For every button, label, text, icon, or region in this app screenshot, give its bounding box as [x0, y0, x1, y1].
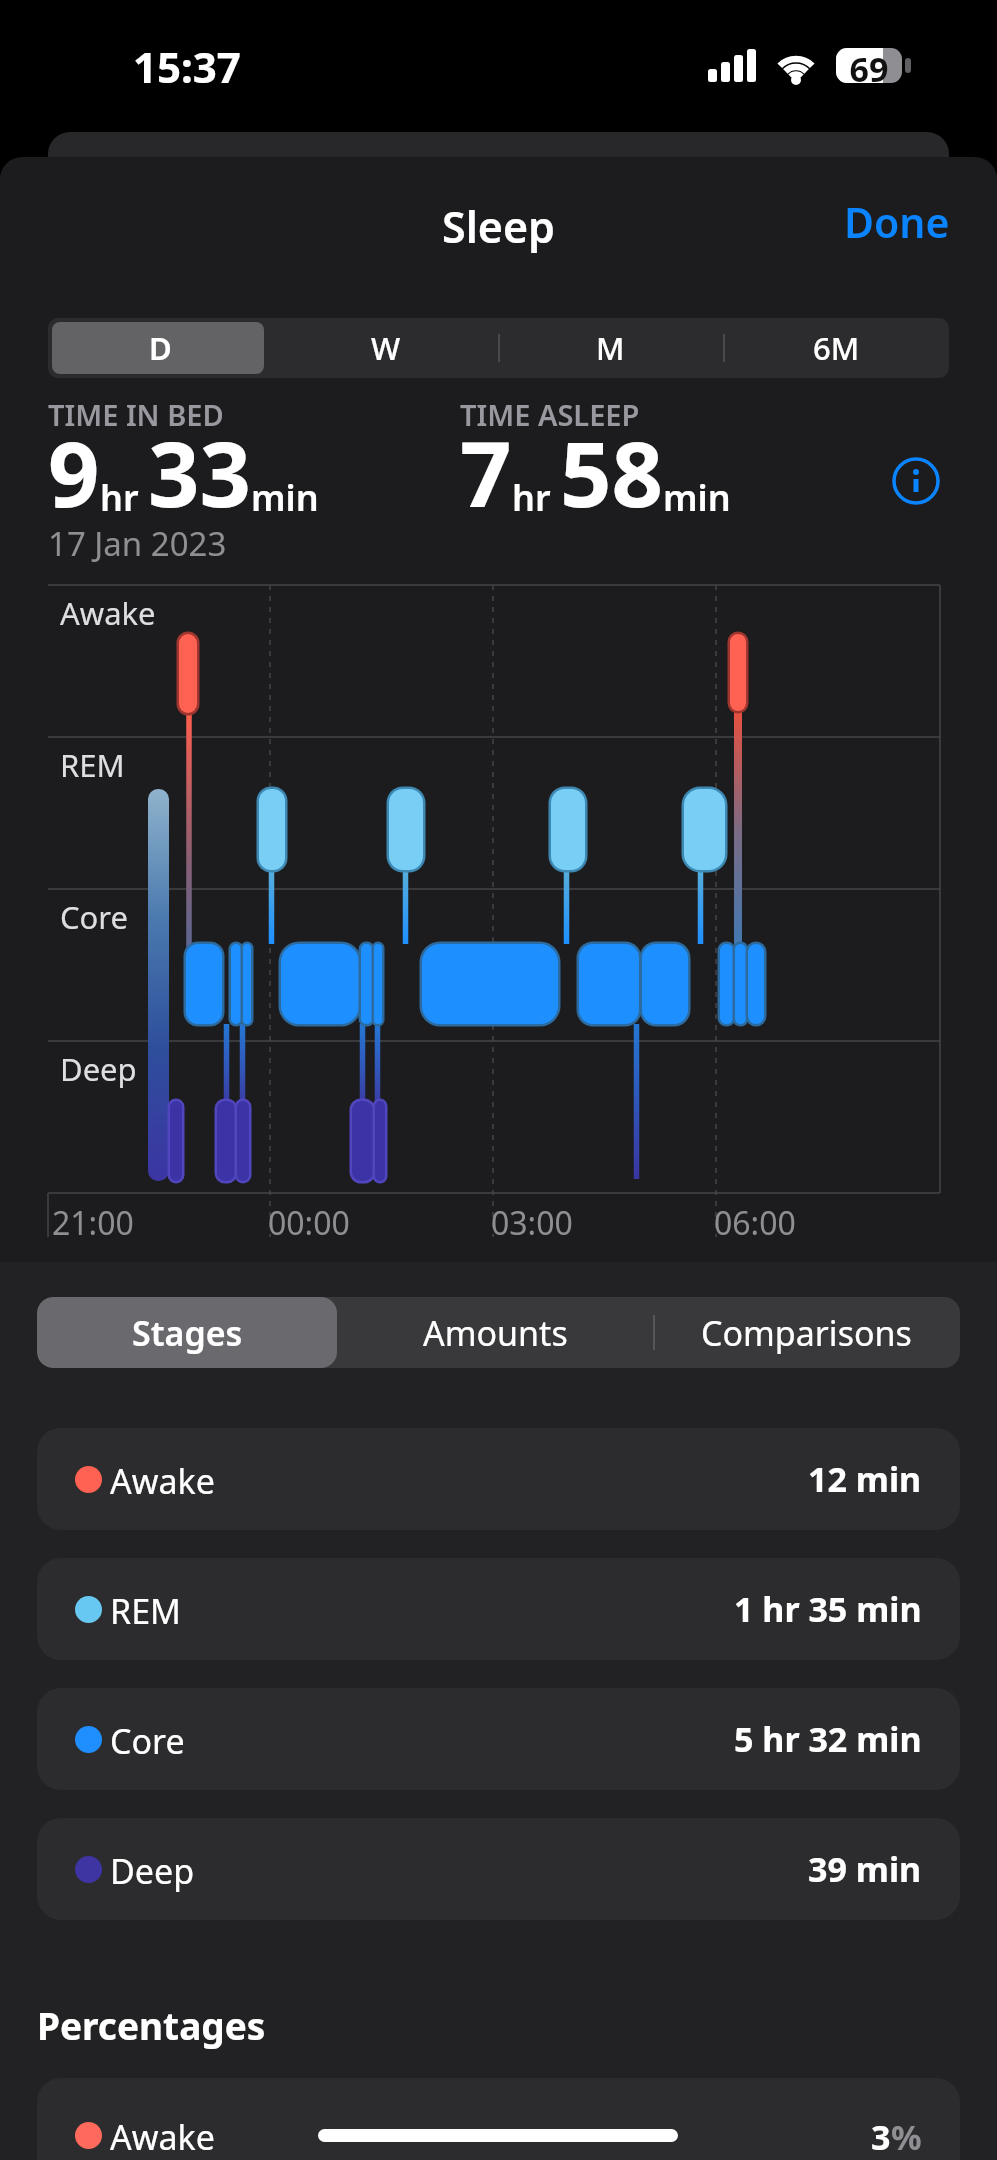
staticText: 39 min: [808, 1846, 922, 1892]
staticText: hr: [512, 473, 560, 522]
button[interactable]: Stages: [37, 1297, 337, 1368]
staticText: min: [251, 473, 319, 522]
button[interactable]: D: [48, 318, 273, 378]
staticText: Core: [60, 896, 129, 938]
staticText: W: [371, 327, 401, 369]
staticText: Awake: [110, 2114, 215, 2160]
staticText: 03:00: [491, 1201, 573, 1245]
staticText: 17 Jan 2023: [48, 521, 227, 566]
staticText: 15:37: [133, 38, 241, 95]
staticText: Comparisons: [701, 1310, 912, 1356]
button[interactable]: M: [498, 318, 723, 378]
button[interactable]: Deep: [37, 1818, 960, 1920]
button[interactable]: Core: [37, 1688, 960, 1790]
staticText: REM: [60, 744, 125, 786]
staticText: 06:00: [714, 1201, 796, 1245]
staticText: Core: [110, 1718, 185, 1764]
button[interactable]: REM: [37, 1558, 960, 1660]
button[interactable]: Awake: [37, 2078, 960, 2160]
staticText: Stages: [132, 1310, 243, 1356]
staticText: 58: [560, 411, 663, 534]
button[interactable]: Awake: [37, 1428, 960, 1530]
staticText: M: [596, 327, 625, 369]
button[interactable]: Comparisons: [653, 1297, 960, 1368]
staticText: Done: [844, 194, 950, 250]
button[interactable]: Amounts: [337, 1297, 653, 1368]
staticText: Amounts: [423, 1310, 568, 1356]
staticText: Awake: [110, 1458, 215, 1504]
staticText: 33: [148, 411, 251, 534]
button[interactable]: 6M: [723, 318, 949, 378]
staticText: 6M: [813, 327, 860, 369]
staticText: D: [149, 327, 172, 369]
staticText: %: [891, 2114, 922, 2160]
staticText: min: [663, 473, 731, 522]
staticText: 1 hr 35 min: [734, 1586, 922, 1632]
staticText: Sleep: [0, 197, 997, 256]
staticText: hr: [100, 473, 148, 522]
button[interactable]: Done: [830, 192, 960, 252]
button[interactable]: W: [273, 318, 498, 378]
button[interactable]: [52, 322, 264, 374]
staticText: 69: [836, 46, 902, 92]
staticText: TIME ASLEEP: [460, 395, 640, 434]
staticText: 12 min: [808, 1456, 922, 1502]
staticText: Deep: [60, 1048, 137, 1090]
staticText: Percentages: [37, 2000, 266, 2050]
staticText: REM: [110, 1588, 181, 1634]
button[interactable]: [37, 1297, 337, 1368]
staticText: 3: [871, 2114, 891, 2160]
staticText: 5 hr 32 min: [734, 1716, 922, 1762]
staticText: TIME IN BED: [48, 395, 224, 434]
staticText: 00:00: [268, 1201, 350, 1245]
button[interactable]: [890, 455, 942, 507]
staticText: 7: [460, 411, 512, 534]
staticText: Awake: [60, 592, 156, 634]
staticText: 9: [48, 411, 100, 534]
staticText: 21:00: [52, 1201, 134, 1245]
staticText: Deep: [110, 1848, 195, 1894]
